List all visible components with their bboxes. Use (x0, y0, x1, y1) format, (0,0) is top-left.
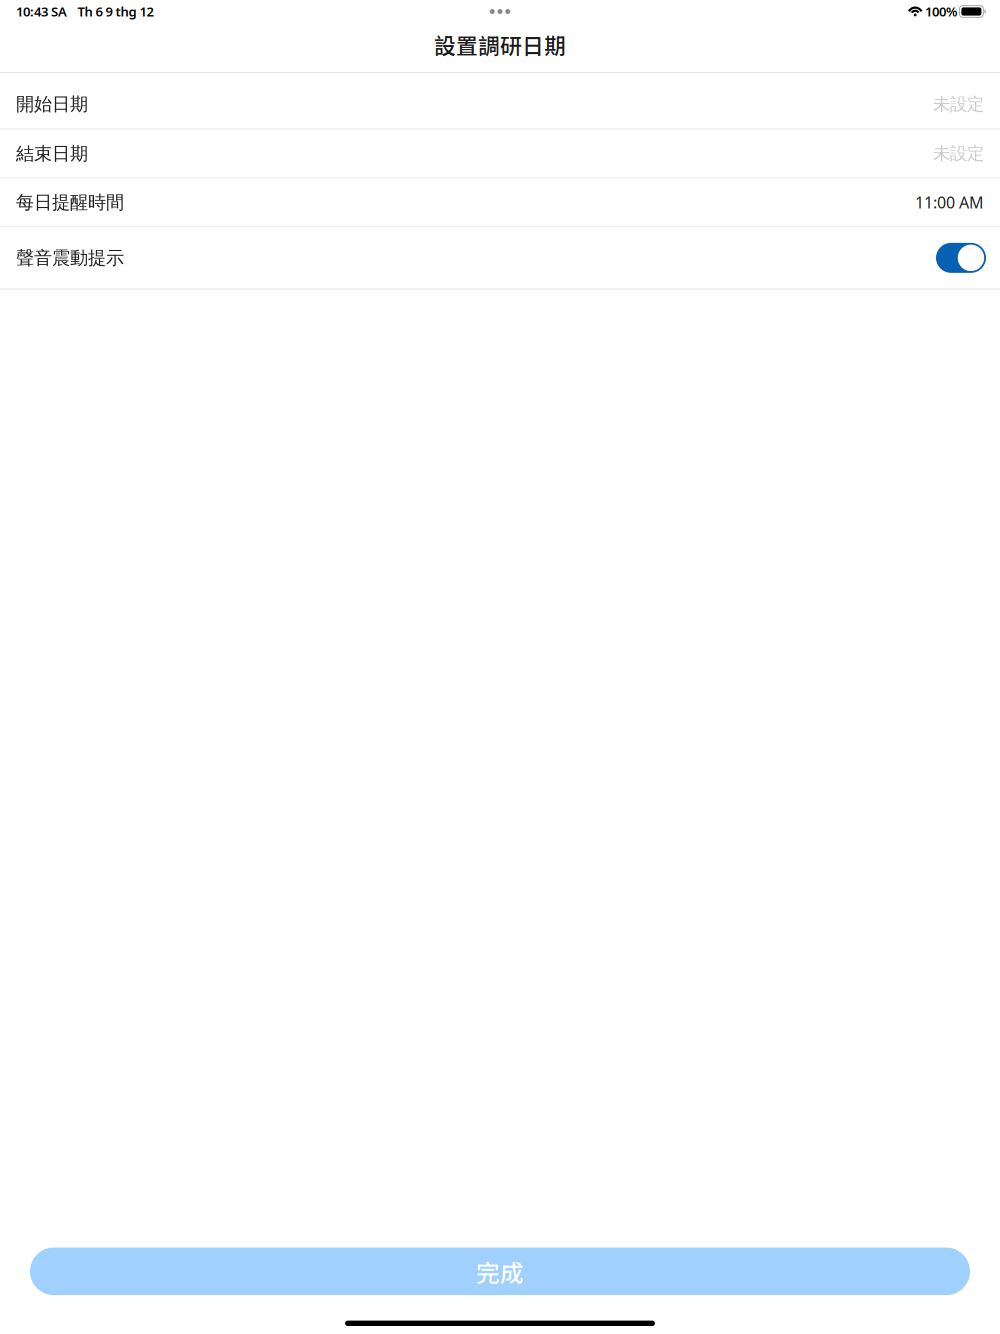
staticText: 設置調研日期 (434, 29, 566, 60)
button[interactable]: 開始日期 (0, 73, 1000, 128)
staticText: 未設定 (933, 93, 984, 115)
staticText: Th 6 9 thg 12 (77, 3, 153, 20)
staticText: 100% (925, 3, 957, 20)
button[interactable]: 每日提醒時間 (0, 179, 1000, 226)
button[interactable]: 聲音震動提示 (936, 243, 986, 273)
staticText: 每日提醒時間 (16, 191, 124, 214)
staticText: 10:43 SA (16, 3, 67, 20)
button[interactable]: 完成 (30, 1248, 970, 1295)
staticText: 11:00 AM (915, 192, 984, 213)
staticText: 未設定 (933, 143, 984, 164)
button[interactable]: 結束日期 (0, 130, 1000, 177)
staticText: 結束日期 (16, 142, 88, 165)
staticText: 完成 (476, 1254, 524, 1288)
staticText: 聲音震動提示 (16, 246, 124, 269)
staticText: 開始日期 (16, 93, 88, 115)
